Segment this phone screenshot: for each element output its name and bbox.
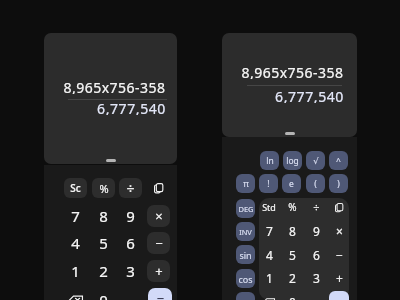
staticText: cos: [238, 273, 253, 285]
button[interactable]: −: [329, 245, 349, 264]
button[interactable]: cos: [236, 269, 255, 288]
button[interactable]: (: [306, 174, 325, 193]
button[interactable]: Backspace: [259, 292, 279, 300]
staticText: +: [336, 270, 343, 286]
staticText: 2: [289, 270, 296, 286]
staticText: 3: [313, 270, 320, 286]
button[interactable]: ^: [329, 151, 348, 170]
button[interactable]: tan: [236, 292, 255, 300]
staticText: 1: [71, 261, 80, 281]
staticText: √: [313, 156, 319, 166]
staticText: 3: [126, 261, 135, 281]
button[interactable]: −: [147, 232, 170, 254]
button[interactable]: %: [282, 198, 302, 216]
staticText: INV: [239, 227, 252, 237]
button[interactable]: 6: [119, 232, 142, 254]
button[interactable]: 0: [92, 289, 115, 300]
staticText: −: [155, 234, 163, 252]
staticText: ×: [155, 207, 163, 225]
button[interactable]: π: [236, 174, 255, 193]
staticText: 6: [126, 233, 135, 253]
button[interactable]: !: [259, 174, 278, 193]
button[interactable]: 7: [259, 221, 279, 240]
staticText: (: [314, 178, 317, 190]
button[interactable]: e: [282, 174, 301, 193]
button[interactable]: ln: [260, 151, 279, 170]
staticText: e: [289, 178, 294, 190]
button[interactable]: +: [147, 260, 170, 282]
staticText: DEG: [238, 204, 254, 214]
button[interactable]: +: [329, 268, 349, 287]
staticText: 8: [289, 223, 296, 239]
staticText: −: [336, 247, 343, 263]
staticText: ÷: [126, 179, 135, 198]
button[interactable]: Sc: [64, 178, 87, 198]
button[interactable]: 9: [306, 221, 326, 240]
staticText: ^: [336, 155, 341, 167]
button[interactable]: 2: [92, 260, 115, 282]
staticText: 2: [99, 261, 108, 281]
button[interactable]: ): [329, 174, 348, 193]
button[interactable]: 9: [119, 205, 142, 227]
button[interactable]: %: [92, 178, 115, 198]
staticText: 4: [266, 247, 273, 263]
button[interactable]: Backspace: [64, 289, 87, 300]
button[interactable]: 2: [282, 268, 302, 287]
button[interactable]: 3: [119, 260, 142, 282]
button[interactable]: INV: [236, 222, 255, 241]
button[interactable]: 4: [64, 232, 87, 254]
button[interactable]: sin: [236, 245, 255, 264]
staticText: %: [99, 181, 109, 196]
button[interactable]: 8: [282, 221, 302, 240]
staticText: !: [267, 178, 270, 190]
staticText: 7: [266, 223, 273, 239]
staticText: 5: [289, 247, 296, 263]
button[interactable]: 5: [92, 232, 115, 254]
staticText: 0: [289, 294, 296, 300]
button[interactable]: Copy: [329, 198, 349, 216]
staticText: ln: [266, 155, 274, 167]
staticText: ÷: [313, 200, 320, 215]
button[interactable]: 1: [64, 260, 87, 282]
staticText: π: [243, 178, 249, 190]
button[interactable]: ×: [329, 221, 349, 240]
button[interactable]: ×: [147, 205, 170, 227]
staticText: 9: [126, 206, 135, 226]
button[interactable]: ÷: [119, 178, 142, 198]
button[interactable]: 4: [259, 245, 279, 264]
button[interactable]: √: [306, 151, 325, 170]
staticText: 6,777,540: [275, 87, 344, 103]
button[interactable]: =: [329, 291, 349, 300]
staticText: 0: [99, 290, 108, 300]
staticText: 6,777,540: [97, 99, 166, 115]
button[interactable]: 6: [306, 245, 326, 264]
staticText: 8: [99, 206, 108, 226]
staticText: =: [156, 290, 165, 300]
button[interactable]: Copy: [147, 178, 170, 198]
staticText: %: [288, 200, 297, 214]
staticText: 9: [313, 223, 320, 239]
staticText: 8,965x756-358: [241, 63, 344, 79]
staticText: 1: [266, 270, 273, 286]
button[interactable]: 3: [306, 268, 326, 287]
staticText: 7: [71, 206, 80, 226]
staticText: +: [155, 262, 163, 280]
staticText: 4: [71, 233, 80, 253]
button[interactable]: Std: [259, 198, 279, 216]
button[interactable]: 0: [282, 292, 302, 300]
button[interactable]: ÷: [306, 198, 326, 216]
button[interactable]: 7: [64, 205, 87, 227]
button[interactable]: DEG: [236, 199, 255, 218]
button[interactable]: 8: [92, 205, 115, 227]
button[interactable]: 1: [259, 268, 279, 287]
staticText: 8,965x756-358: [63, 78, 166, 94]
button[interactable]: =: [148, 288, 172, 300]
button[interactable]: log: [283, 151, 302, 170]
button[interactable]: 5: [282, 245, 302, 264]
